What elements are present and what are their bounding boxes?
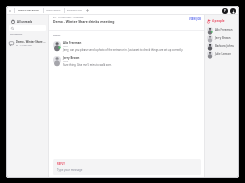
staticText: REPLY (57, 162, 65, 166)
button[interactable]: 4 people (207, 19, 225, 23)
button[interactable]: All unreads (11, 18, 44, 25)
button[interactable]: VIEW JOB (189, 17, 201, 21)
button[interactable]: Demo - Winter Share dri... (9, 40, 46, 47)
staticText: 10:14 (63, 60, 69, 63)
staticText: Type your message (57, 168, 83, 172)
staticText: Demo - Winter Share drinks meeting (53, 19, 115, 24)
staticText: Exhibition Hall (67, 9, 82, 12)
staticText: General Tips Round (18, 9, 39, 12)
staticText: TODAY (53, 34, 61, 37)
staticText: Alix Freeman (63, 41, 82, 45)
button[interactable]: REPLY (53, 159, 201, 175)
button[interactable]: Help (222, 8, 228, 14)
button[interactable]: Alix Freeman (207, 26, 239, 34)
button[interactable]: Menu (6, 6, 14, 15)
staticText: 4 people (212, 19, 225, 23)
button[interactable]: Exhibition Hall (64, 6, 84, 15)
staticText: Alix Freeman (215, 28, 233, 32)
button[interactable]: Barbara Johns (207, 42, 239, 50)
button[interactable]: New tab (84, 6, 91, 15)
staticText: Julie Leeson (215, 52, 231, 56)
button[interactable] (9, 25, 46, 31)
staticText: All unreads (17, 20, 33, 24)
staticText: Sure thing. Give me 5 mins to walk over. (63, 63, 112, 67)
button[interactable]: General Tips Round (14, 6, 43, 15)
button[interactable]: Music Festival (43, 6, 64, 15)
staticText: CHANNELS (10, 33, 23, 36)
staticText: ? (224, 9, 226, 13)
staticText: Jerry Brown (215, 36, 231, 40)
staticText: Barbara Johns (215, 44, 234, 48)
staticText: #1 · 12 Mar 2021 · 5 people (53, 15, 84, 18)
staticText: Music Festival (46, 9, 61, 12)
staticText: 10:11 (63, 45, 69, 48)
button[interactable]: Profile (230, 8, 236, 14)
staticText: Jerry, can you please send a photo of th… (63, 48, 184, 52)
button[interactable]: Jerry Brown (207, 34, 239, 42)
staticText: #1 · 12 Mar 2021 (16, 44, 33, 47)
staticText: Demo - Winter Share dri... (16, 40, 46, 44)
button[interactable]: Julie Leeson (207, 50, 239, 58)
staticText: Jerry Brown (63, 56, 80, 60)
